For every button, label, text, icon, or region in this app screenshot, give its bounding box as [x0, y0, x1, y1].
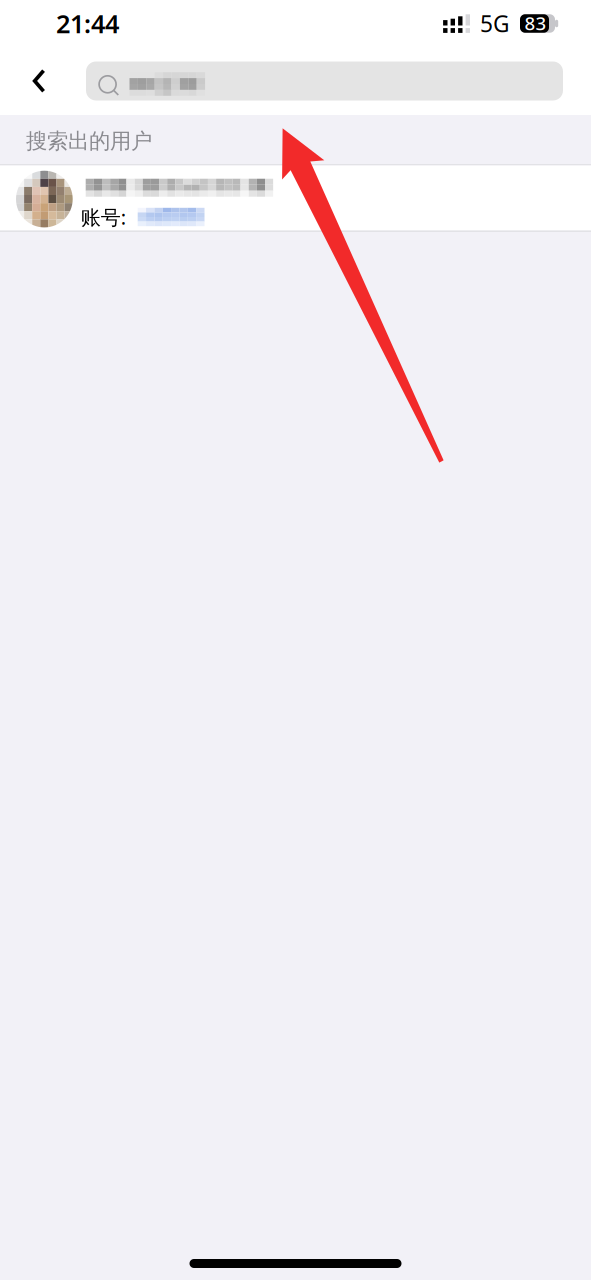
staticText: 账号:	[81, 204, 126, 230]
staticText: 21:44	[56, 7, 119, 40]
button[interactable]: 账号:	[0, 165, 591, 230]
staticText: 5G	[480, 8, 510, 38]
staticText: 搜索出的用户	[26, 128, 152, 154]
button[interactable]: Search	[86, 61, 563, 100]
staticText: 83	[524, 11, 546, 35]
button[interactable]: Back	[12, 54, 66, 108]
